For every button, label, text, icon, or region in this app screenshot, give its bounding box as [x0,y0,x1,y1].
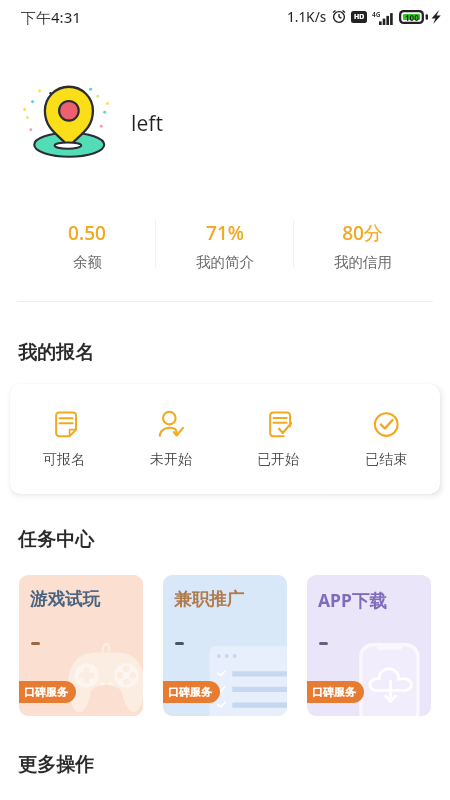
button[interactable]: 已开始 [224,384,332,494]
staticText: 0.50 [68,220,106,246]
staticText: 已开始 [257,451,299,469]
staticText: 未开始 [150,451,192,469]
button[interactable]: 未开始 [117,384,224,494]
button[interactable]: 已结束 [332,384,440,494]
staticText: 71% [206,220,244,246]
staticText: APP下载 [318,588,387,612]
button[interactable]: 游戏试玩 [19,575,143,716]
staticText: 任务中心 [18,528,94,552]
staticText: 口碑服务 [168,685,212,699]
staticText: 我的信用 [334,253,392,271]
button[interactable]: 0.50 [19,210,155,280]
staticText: 可报名 [43,451,85,469]
staticText: 我的简介 [196,253,254,271]
staticText: 已结束 [365,451,407,469]
staticText: 余额 [73,253,102,271]
staticText: left [131,109,164,138]
staticText: 我的报名 [18,341,94,365]
staticText: 游戏试玩 [30,588,100,610]
button[interactable]: 80分 [294,210,431,280]
staticText: 1.1K/s [287,8,327,26]
button[interactable]: 71% [156,210,293,280]
staticText: 兼职推广 [174,588,244,610]
staticText: 下午4:31 [21,7,81,27]
button[interactable]: 可报名 [10,384,117,494]
staticText: 80分 [342,220,383,246]
staticText: HD [354,12,365,22]
staticText: 口碑服务 [24,685,68,699]
staticText: 100 [405,12,419,23]
button[interactable]: APP下载 [307,575,431,716]
button[interactable]: 兼职推广 [163,575,287,716]
staticText: 4G [372,10,381,19]
staticText: 更多操作 [18,753,94,777]
staticText: 口碑服务 [312,685,356,699]
